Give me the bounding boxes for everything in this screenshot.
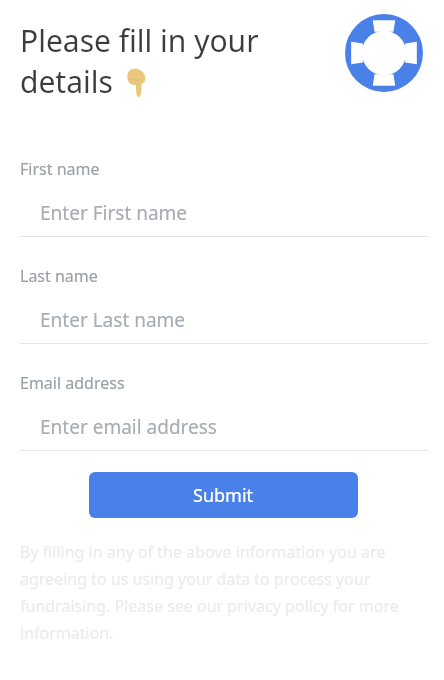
other: Lifebuoy [345,14,423,92]
button[interactable]: Last name [0,265,444,351]
button[interactable]: Email address [0,372,444,458]
button[interactable]: First name [0,158,444,244]
staticText: Please fill in your [20,20,259,61]
staticText: By filling in any of the above informati… [20,541,420,644]
staticText: Email address [20,372,125,394]
staticText: Last name [20,265,98,287]
button[interactable]: Submit [89,472,358,518]
staticText: Enter First name [40,200,188,226]
staticText: Enter Last name [40,307,186,333]
staticText: details [20,61,113,102]
staticText: Enter email address [40,414,217,440]
staticText: First name [20,158,100,180]
staticText: Submit [193,483,254,508]
